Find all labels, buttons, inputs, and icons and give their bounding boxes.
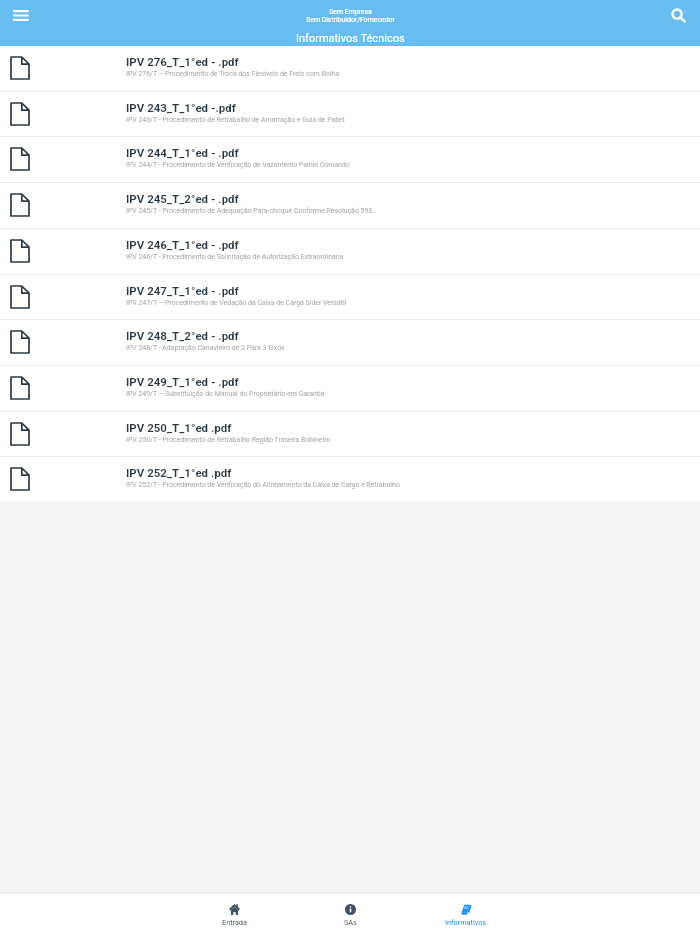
staticText: Informativos	[445, 918, 487, 927]
staticText: Sem Distribuidor/Fornecedor	[306, 16, 395, 24]
staticText: Informativos Técnicos	[296, 32, 405, 45]
staticText: IPV 245/T - Procedimento de Adequação Pa…	[126, 207, 375, 215]
staticText: IPV 249_T_1°ed - .pdf	[126, 375, 239, 388]
staticText: SAs	[344, 918, 357, 927]
staticText: IPV 245_T_2°ed - .pdf	[126, 192, 239, 205]
staticText: IPV 250/T - Procedimento de Retrabalho R…	[126, 436, 331, 444]
staticText: IPV 244/T - Procedimento de Verificação …	[126, 161, 350, 169]
staticText: IPV 243_T_1°ed -.pdf	[126, 101, 236, 114]
staticText: IPV 276/T – Procedimento de Troca dos Fl…	[126, 70, 340, 78]
staticText: IPV 247_T_1°ed - .pdf	[126, 284, 239, 297]
staticText: IPV 243/T - Procedimento de Retrabalho d…	[126, 116, 345, 124]
staticText: IPV 249/T – Substituição do Manual do Pr…	[126, 390, 325, 398]
button[interactable]: IPV 243_T_1°ed -.pdf	[0, 92, 700, 137]
button[interactable]: Informativos	[408, 894, 524, 934]
button[interactable]: IPV 250_T_1°ed .pdf	[0, 412, 700, 457]
button[interactable]: Menu	[0, 0, 42, 31]
button[interactable]: IPV 246_T_1°ed - .pdf	[0, 229, 700, 275]
button[interactable]: IPV 252_T_1°ed .pdf	[0, 457, 700, 503]
staticText: Sem Empresa	[329, 8, 372, 16]
button[interactable]: SAs	[292, 894, 408, 934]
staticText: IPV 252_T_1°ed .pdf	[126, 466, 232, 479]
staticText: IPV 250_T_1°ed .pdf	[126, 421, 232, 434]
button[interactable]: IPV 249_T_1°ed - .pdf	[0, 366, 700, 412]
staticText: IPV 246/T - Procedimento de Solicitação …	[126, 253, 344, 261]
button[interactable]: Entrada	[176, 894, 292, 934]
button[interactable]: IPV 245_T_2°ed - .pdf	[0, 183, 700, 229]
staticText: IPV 247/T – Procedimento de Vedação da C…	[126, 299, 347, 307]
button[interactable]: IPV 276_T_1°ed - .pdf	[0, 46, 700, 92]
staticText: Entrada	[222, 918, 247, 927]
button[interactable]: Search	[658, 0, 700, 31]
staticText: IPV 248_T_2°ed - .pdf	[126, 329, 239, 342]
staticText: IPV 252/T - Procedimento de Verificação …	[126, 481, 400, 489]
button[interactable]: IPV 248_T_2°ed - .pdf	[0, 320, 700, 366]
staticText: IPV 246_T_1°ed - .pdf	[126, 238, 239, 251]
staticText: IPV 248/T - Adaptação Canavieiro de 2 Pa…	[126, 344, 285, 352]
staticText: IPV 276_T_1°ed - .pdf	[126, 55, 239, 68]
button[interactable]: IPV 247_T_1°ed - .pdf	[0, 275, 700, 320]
staticText: IPV 244_T_1°ed - .pdf	[126, 146, 239, 159]
button[interactable]: IPV 244_T_1°ed - .pdf	[0, 137, 700, 183]
